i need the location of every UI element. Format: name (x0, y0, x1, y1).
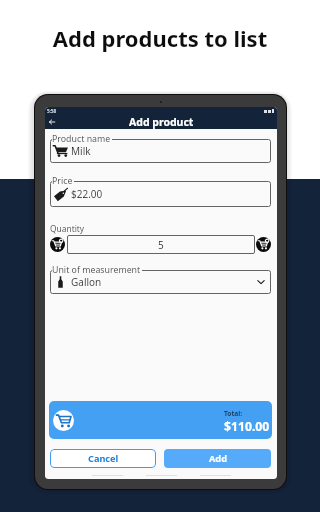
staticText: Cancel (88, 452, 119, 465)
staticText: Milk (71, 144, 91, 158)
staticText: Quantity (50, 223, 85, 234)
button[interactable]: Total: (49, 401, 272, 439)
staticText: $110.00 (224, 418, 270, 435)
button[interactable]: Cancel (50, 449, 156, 468)
staticText: 5:58 (47, 108, 57, 114)
button[interactable]: Add (164, 449, 271, 468)
staticText: Add (209, 452, 227, 465)
button[interactable] (50, 181, 271, 207)
button[interactable] (50, 139, 271, 163)
staticText: 5 (158, 238, 164, 252)
staticText: Add product (129, 115, 194, 129)
staticText: Price (52, 175, 73, 187)
staticText: $22.00 (71, 187, 103, 201)
button[interactable]: Add to cart (256, 237, 271, 252)
staticText: Gallon (71, 275, 102, 289)
button[interactable]: 5 (67, 235, 255, 254)
staticText: Add products to list (0, 23, 320, 53)
button[interactable]: Back (45, 115, 59, 129)
button[interactable]: Remove from cart (50, 237, 65, 252)
staticText: Product name (52, 133, 111, 145)
staticText: Unit of measurement (52, 264, 141, 276)
button[interactable] (50, 270, 271, 294)
staticText: Total: (224, 409, 243, 418)
